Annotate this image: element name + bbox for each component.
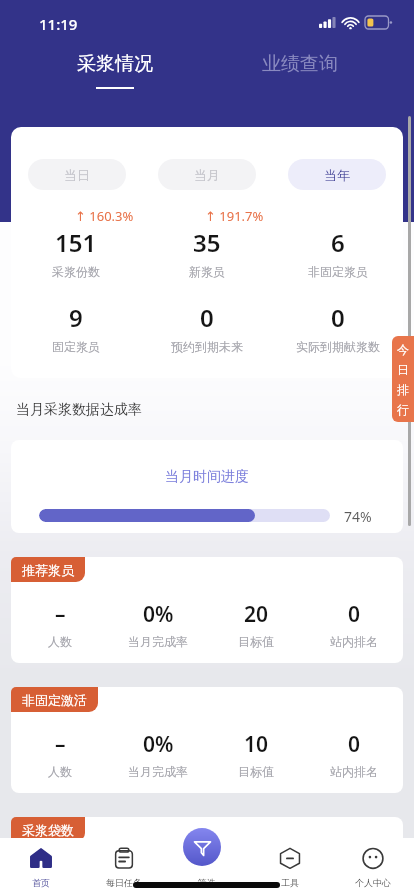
staticText: 151 [55, 226, 97, 259]
staticText: 工具 [281, 877, 299, 888]
staticText: 0 [250, 860, 263, 889]
staticText: 非固定激活 [22, 692, 87, 708]
button[interactable]: 每日任务 [82, 838, 165, 896]
staticText: 0 [200, 301, 214, 334]
staticText: – [55, 600, 66, 629]
staticText: 采浆情况 [77, 52, 153, 76]
staticText: 当月时间进度 [11, 468, 403, 486]
staticText: 目标值 [238, 634, 274, 649]
staticText: 20 [244, 600, 269, 629]
staticText: 当日 [64, 167, 90, 183]
staticText: 35 [193, 226, 221, 259]
staticText: 站内排名 [330, 764, 378, 779]
staticText: – [55, 730, 66, 759]
staticText: ↑ 191.7% [205, 207, 264, 225]
button[interactable]: 工具 [248, 838, 331, 896]
staticText: 11:19 [39, 14, 78, 34]
staticText: 当月完成率 [128, 764, 188, 779]
staticText: 推荐浆员 [22, 562, 74, 578]
button[interactable]: 筛选 [165, 838, 248, 896]
staticText: 非固定浆员 [308, 264, 368, 279]
staticText: 0% [143, 860, 174, 889]
button[interactable]: 业绩查询 [240, 52, 360, 86]
button[interactable]: 非固定激活 [11, 687, 98, 712]
staticText: 采浆袋数 [22, 822, 74, 838]
staticText: 6 [331, 226, 345, 259]
button[interactable]: 推荐浆员 [11, 557, 85, 582]
staticText: 固定浆员 [52, 339, 100, 354]
staticText: 人数 [48, 764, 72, 779]
staticText: 0% [143, 730, 174, 759]
staticText: 筛选 [165, 877, 248, 888]
staticText: 0 [348, 860, 361, 889]
button[interactable]: 首页 [0, 838, 82, 896]
staticText: 0% [143, 600, 174, 629]
staticText: 采浆份数 [52, 264, 100, 279]
staticText: 0 [331, 301, 345, 334]
staticText: 每日任务 [106, 877, 142, 888]
staticText: 首页 [32, 877, 50, 888]
button[interactable]: 当年 [288, 159, 386, 190]
button[interactable]: 采浆袋数 [11, 817, 85, 842]
staticText: 当月采浆数据达成率 [16, 401, 142, 419]
staticText: 新浆员 [189, 264, 225, 279]
staticText: 业绩查询 [262, 52, 338, 76]
staticText: 0 [348, 600, 361, 629]
button[interactable]: 当日 [28, 159, 126, 190]
staticText: 当月 [194, 167, 220, 183]
button[interactable]: 个人中心 [331, 838, 414, 896]
staticText: ↑ 160.3% [75, 207, 134, 225]
staticText: 预约到期未来 [171, 339, 243, 354]
staticText: 目标值 [238, 764, 274, 779]
staticText: 0 [348, 730, 361, 759]
staticText: 个人中心 [355, 877, 391, 888]
staticText: 10 [244, 730, 269, 759]
staticText: 74% [344, 507, 372, 526]
staticText: 站内排名 [330, 634, 378, 649]
staticText: 实际到期献浆数 [296, 339, 380, 354]
staticText: 今 日 排 行 [397, 342, 409, 417]
staticText: 当月完成率 [128, 634, 188, 649]
button[interactable]: 今 日 排 行 [392, 336, 414, 422]
staticText: 人数 [48, 634, 72, 649]
staticText: 当年 [324, 167, 350, 183]
button[interactable]: 筛选 [183, 828, 221, 866]
button[interactable]: 当月 [158, 159, 256, 190]
staticText: 9 [69, 301, 83, 334]
button[interactable]: 采浆情况 [55, 52, 175, 100]
